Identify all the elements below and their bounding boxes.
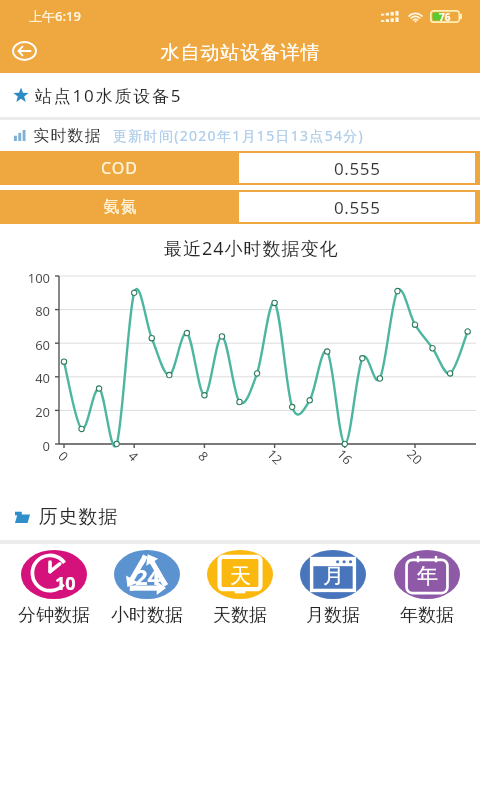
staticText: 更新时间(2020年1月15日13点54分) [113,126,365,145]
staticText: 40 [0,369,50,387]
staticText: 0 [57,447,73,463]
button[interactable]: 站点10水质设备5 [0,73,480,117]
button[interactable]: 月 [287,550,379,627]
button[interactable]: 天 [194,550,286,627]
staticText: 8 [197,447,213,463]
staticText: COD [101,157,138,179]
staticText: 0.555 [334,196,381,219]
staticText: 100 [0,269,50,287]
button[interactable]: 24 [101,550,193,627]
staticText: 分钟数据 [18,604,90,627]
button[interactable]: COD [0,151,480,185]
staticText: 20 [0,403,50,421]
staticText: 0 [0,437,50,455]
staticText: 月 [323,563,344,589]
staticText: 天 [230,563,251,589]
staticText: 0.555 [334,157,381,180]
staticText: 12 [266,445,287,466]
staticText: 站点10水质设备5 [35,84,183,107]
staticText: 实时数据 [33,126,101,146]
staticText: 氨氮 [103,197,137,217]
button[interactable]: 10 [8,550,100,627]
button[interactable]: Back [2,31,46,71]
staticText: 历史数据 [38,505,118,529]
staticText: 小时数据 [111,604,183,627]
button[interactable]: 氨氮 [0,190,480,224]
staticText: 24 [135,561,161,591]
staticText: 年数据 [400,604,454,627]
staticText: 20 [406,445,427,466]
staticText: 年 [417,563,438,589]
staticText: 天数据 [213,604,267,627]
staticText: 水自动站设备详情 [160,41,320,65]
staticText: 4 [127,447,143,463]
staticText: 月数据 [306,604,360,627]
staticText: 16 [336,445,357,466]
staticText: 60 [0,336,50,354]
staticText: 最近24小时数据变化 [164,236,339,261]
staticText: 80 [0,302,50,320]
staticText: 76 [439,10,451,23]
button[interactable]: 年 [381,550,473,627]
staticText: 上午6:19 [29,7,81,25]
staticText: 10 [55,571,76,596]
